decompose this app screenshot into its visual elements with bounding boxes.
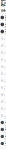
button[interactable]: a	[0, 35, 6, 42]
staticText: Name	[5, 13, 6, 20]
button[interactable]: a	[0, 49, 6, 56]
staticText: m	[5, 132, 6, 134]
button[interactable]: a	[0, 70, 6, 77]
staticText: Name	[5, 118, 6, 125]
button[interactable]: Name	[0, 133, 6, 140]
staticText: 9:41	[1, 0, 4, 8]
staticText: Name	[5, 139, 6, 146]
button[interactable]: a	[0, 56, 6, 63]
button[interactable]: Name	[0, 126, 6, 133]
button[interactable]: Name	[0, 140, 6, 147]
staticText: Name	[5, 27, 6, 34]
button[interactable]: Name	[0, 14, 6, 21]
staticText: m	[5, 27, 6, 29]
button[interactable]: Name	[0, 119, 6, 126]
staticText: Name	[5, 132, 6, 139]
button[interactable]: a	[0, 112, 6, 119]
staticText: m	[5, 125, 6, 127]
staticText: Name	[5, 125, 6, 132]
button[interactable]: a	[0, 105, 6, 112]
staticText: m	[5, 139, 6, 141]
button[interactable]: Name	[0, 28, 6, 35]
button[interactable]: Name	[0, 21, 6, 28]
button[interactable]: a	[0, 63, 6, 70]
staticText: m	[5, 20, 6, 22]
staticText: Messages	[1, 0, 6, 23]
button[interactable]: a	[0, 84, 6, 91]
button[interactable]: a	[0, 91, 6, 98]
staticText: Name	[5, 20, 6, 27]
button[interactable]: a	[0, 77, 6, 84]
staticText: m	[5, 146, 6, 148]
button[interactable]: a	[0, 42, 6, 49]
button[interactable]: a	[0, 98, 6, 105]
